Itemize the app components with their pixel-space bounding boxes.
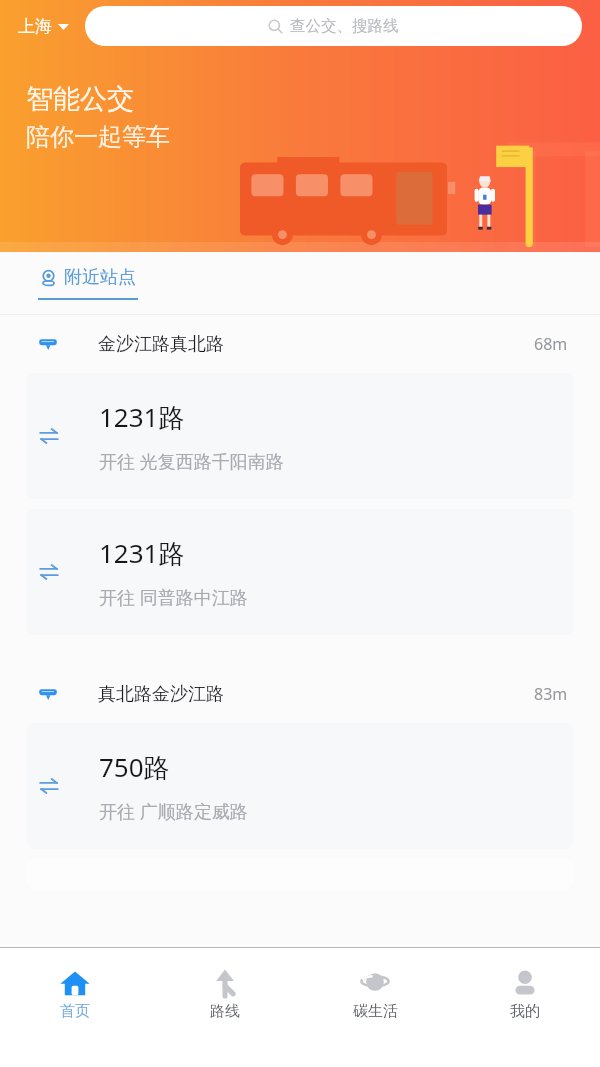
staticText: 陪你一起等车 <box>26 122 170 152</box>
staticText: 我的 <box>510 1002 540 1021</box>
button[interactable]: 1231路 <box>27 373 573 499</box>
staticText: 真北路金沙江路 <box>98 683 224 706</box>
staticText: 开往 光复西路千阳南路 <box>99 449 284 474</box>
button[interactable]: 金沙江路真北路 <box>0 315 600 373</box>
button[interactable]: 上海 <box>14 12 73 41</box>
other: 首页 <box>58 966 92 1000</box>
button[interactable]: 附近站点 <box>40 266 136 289</box>
staticText: 1231路 <box>99 535 185 571</box>
other: 我的 <box>508 966 542 1000</box>
staticText: 附近站点 <box>64 266 136 289</box>
staticText: 750路 <box>99 749 170 785</box>
button[interactable]: 碳生活 <box>300 948 450 1021</box>
button[interactable]: 查公交、搜路线 <box>85 6 582 46</box>
button[interactable]: 路线 <box>150 948 300 1021</box>
button[interactable]: 真北路金沙江路 <box>0 665 600 723</box>
staticText: 查公交、搜路线 <box>290 16 399 36</box>
staticText: 路线 <box>210 1002 240 1021</box>
staticText: 首页 <box>60 1002 90 1021</box>
button[interactable]: 我的 <box>450 948 600 1021</box>
button[interactable]: 1231路 <box>27 509 573 635</box>
staticText: 金沙江路真北路 <box>98 333 224 356</box>
staticText: 智能公交 <box>26 82 134 116</box>
button[interactable]: 750路 <box>27 723 573 849</box>
staticText: 上海 <box>18 16 52 37</box>
button[interactable]: 首页 <box>0 948 150 1021</box>
staticText: 83m <box>534 683 568 705</box>
staticText: 开往 同普路中江路 <box>99 585 248 610</box>
other: 碳生活 <box>358 966 392 1000</box>
other: 路线 <box>208 966 242 1000</box>
staticText: 68m <box>534 333 568 355</box>
staticText: 碳生活 <box>353 1002 398 1021</box>
staticText: 开往 广顺路定威路 <box>99 799 248 824</box>
staticText: 1231路 <box>99 399 185 435</box>
